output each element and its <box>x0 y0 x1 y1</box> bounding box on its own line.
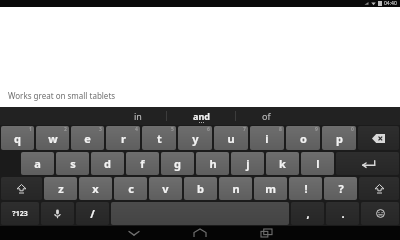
button[interactable]: and <box>167 107 235 125</box>
button[interactable]: of <box>236 107 296 125</box>
button[interactable]: Enter <box>336 152 399 175</box>
button[interactable]: Backspace <box>358 126 399 150</box>
button[interactable]: c <box>114 177 147 200</box>
staticText: s <box>70 156 76 171</box>
staticText: / <box>90 206 95 221</box>
staticText: h <box>209 156 217 171</box>
staticText: y <box>192 131 199 146</box>
staticText: x <box>92 181 99 196</box>
staticText: l <box>316 156 320 171</box>
button[interactable]: x <box>79 177 112 200</box>
staticText: 7 <box>243 126 246 133</box>
button[interactable]: , <box>291 202 324 225</box>
button[interactable]: t <box>142 126 176 150</box>
button[interactable]: . <box>326 202 359 225</box>
staticText: t <box>157 131 162 146</box>
staticText: z <box>58 181 64 196</box>
button[interactable]: Recent apps <box>233 226 299 240</box>
staticText: m <box>265 181 276 196</box>
staticText: w <box>48 131 58 146</box>
staticText: , <box>306 206 310 221</box>
button[interactable]: r <box>106 126 140 150</box>
staticText: 5 <box>171 126 174 133</box>
staticText: 6 <box>207 126 210 133</box>
button[interactable]: q <box>1 126 34 150</box>
button[interactable]: ?123 <box>1 202 39 225</box>
staticText: 8 <box>279 126 282 133</box>
staticText: v <box>162 181 169 196</box>
button[interactable]: o <box>286 126 320 150</box>
staticText: 2 <box>64 126 67 133</box>
staticText: d <box>104 156 111 171</box>
button[interactable]: / <box>76 202 109 225</box>
button[interactable]: j <box>231 152 264 175</box>
staticText: and <box>193 110 210 122</box>
button[interactable]: a <box>21 152 54 175</box>
button[interactable]: u <box>214 126 248 150</box>
staticText: q <box>14 131 21 146</box>
staticText: f <box>140 156 145 171</box>
button[interactable]: w <box>36 126 69 150</box>
button[interactable]: Hide keyboard <box>101 226 167 240</box>
staticText: . <box>341 206 345 221</box>
staticText: 1 <box>29 126 32 133</box>
button[interactable]: g <box>161 152 194 175</box>
button[interactable]: m <box>254 177 287 200</box>
staticText: 4 <box>135 126 138 133</box>
button[interactable]: ? <box>324 177 357 200</box>
button[interactable]: e <box>71 126 104 150</box>
button[interactable]: n <box>219 177 252 200</box>
staticText: of <box>262 110 271 122</box>
button[interactable]: k <box>266 152 299 175</box>
button[interactable]: h <box>196 152 229 175</box>
button[interactable]: z <box>44 177 77 200</box>
button[interactable]: s <box>56 152 89 175</box>
staticText: j <box>246 156 250 171</box>
button[interactable]: Shift <box>359 177 399 200</box>
staticText: ! <box>304 181 308 196</box>
staticText: Works great on small tablets <box>8 90 116 101</box>
button[interactable]: b <box>184 177 217 200</box>
staticText: p <box>336 131 343 146</box>
staticText: 0 <box>351 126 354 133</box>
button[interactable]: v <box>149 177 182 200</box>
staticText: 3 <box>99 126 102 133</box>
staticText: r <box>121 131 126 146</box>
staticText: o <box>300 131 307 146</box>
button[interactable]: l <box>301 152 334 175</box>
staticText: b <box>197 181 204 196</box>
button[interactable]: f <box>126 152 159 175</box>
staticText: e <box>84 131 91 146</box>
button[interactable]: d <box>91 152 124 175</box>
button[interactable]: Emoji <box>361 202 399 225</box>
button[interactable]: y <box>178 126 212 150</box>
staticText: 9 <box>315 126 318 133</box>
staticText: c <box>128 181 134 196</box>
staticText: 04:40 <box>384 0 397 7</box>
staticText: u <box>227 131 235 146</box>
button[interactable]: i <box>250 126 284 150</box>
staticText: g <box>174 156 181 171</box>
staticText: k <box>279 156 286 171</box>
staticText: n <box>232 181 240 196</box>
staticText: i <box>265 131 269 146</box>
staticText: ? <box>338 181 344 196</box>
button[interactable]: Shift <box>1 177 42 200</box>
button[interactable]: p <box>322 126 356 150</box>
staticText: in <box>134 110 142 122</box>
staticText: a <box>34 156 41 171</box>
button[interactable]: in <box>110 107 166 125</box>
staticText: ?123 <box>12 209 28 219</box>
button[interactable]: ! <box>289 177 322 200</box>
button[interactable]: Home <box>167 226 233 240</box>
button[interactable]: Voice input <box>41 202 74 225</box>
